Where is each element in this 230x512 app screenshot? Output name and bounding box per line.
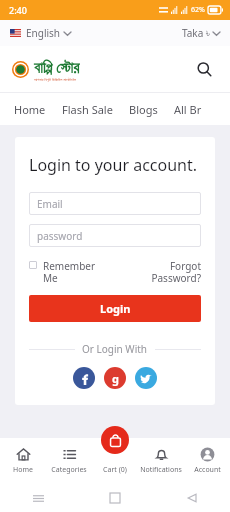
button[interactable]: বাপ্পি স্টোর [12,57,80,82]
staticText: password [37,229,83,243]
button[interactable]: Email [29,192,201,215]
button[interactable]: Account [184,438,230,484]
staticText: 62% [191,5,205,15]
staticText: g [112,371,119,386]
staticText: 2:40 [9,4,27,16]
button[interactable]: English [10,26,71,40]
staticText: All Br [174,102,202,117]
button[interactable]: Home [76,484,153,512]
staticText: Flash Sale [62,102,113,117]
staticText: আপনার বিশ্বস্ত ডিজিটাল মার্কেটপ্লেস [34,77,77,82]
button[interactable]: Forgot Password? [139,259,201,285]
button[interactable]: Home [0,438,46,484]
button[interactable]: Cart (0) [92,438,138,484]
button[interactable]: password [29,224,201,247]
staticText: Account [194,465,221,475]
button[interactable]: Blogs [129,98,158,121]
button[interactable]: Cart [101,426,129,454]
button[interactable]: Login [29,295,201,322]
staticText: Remember Me [43,259,101,285]
staticText: Cart (0) [103,465,127,475]
staticText: Login to your account. [29,154,198,176]
button[interactable]: Back [153,484,230,512]
staticText: Notifications [140,465,182,475]
button[interactable]: Twitter [135,367,157,389]
staticText: Or Login With [82,342,148,356]
button[interactable]: Home [14,98,46,121]
staticText: Home [14,102,46,117]
staticText: Blogs [129,102,158,117]
button[interactable]: All Br [174,98,202,121]
button[interactable]: Facebook [73,367,95,389]
staticText: Email [37,197,63,211]
button[interactable]: Taka ৳ [182,26,220,40]
button[interactable]: Recents [0,484,76,512]
button[interactable]: Search [191,56,217,82]
button[interactable]: Notifications [138,438,184,484]
button[interactable]: Categories [46,438,92,484]
staticText: Home [13,465,33,475]
button[interactable]: Google Plus [104,367,126,389]
staticText: Taka ৳ [182,26,210,40]
staticText: English [26,26,61,40]
button[interactable]: Flash Sale [62,98,113,121]
button[interactable]: Remember Me [29,259,139,285]
staticText: Login [100,301,131,316]
staticText: বাপ্পি স্টোর [34,57,80,77]
staticText: Categories [51,465,87,475]
